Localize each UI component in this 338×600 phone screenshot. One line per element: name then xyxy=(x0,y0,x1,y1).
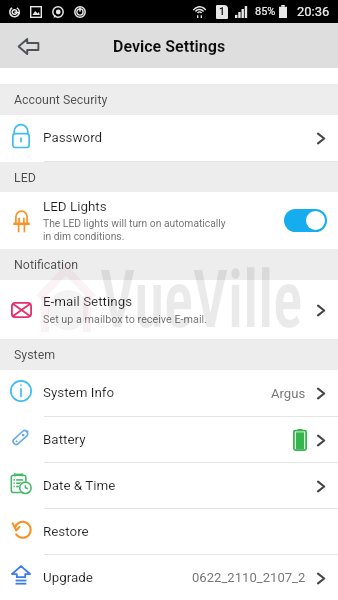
staticText: Notification xyxy=(14,257,79,272)
staticText: The LED lights will turn on automaticall… xyxy=(43,217,226,242)
button[interactable]: E-mail Settings xyxy=(0,280,338,339)
button[interactable]: LED Lights toggle xyxy=(284,209,327,232)
button[interactable]: Date & Time xyxy=(0,463,338,509)
staticText: Upgrade xyxy=(43,570,93,586)
staticText: 85% xyxy=(255,5,276,18)
staticText: Argus xyxy=(271,386,306,401)
staticText: LED xyxy=(14,170,36,185)
button[interactable]: LED Lights xyxy=(0,192,338,249)
button[interactable]: Password xyxy=(0,115,338,162)
staticText: System xyxy=(14,347,56,362)
staticText: System Info xyxy=(43,385,115,401)
staticText: Battery xyxy=(43,432,86,448)
button[interactable]: Restore xyxy=(0,509,338,555)
staticText: VueVille xyxy=(100,252,303,345)
staticText: LED Lights xyxy=(43,199,107,215)
staticText: 20:36 xyxy=(297,4,330,19)
button[interactable]: Back xyxy=(9,27,47,65)
staticText: Device Settings xyxy=(113,37,226,56)
button[interactable]: System Info xyxy=(0,370,338,417)
staticText: Account Security xyxy=(14,92,108,107)
staticText: Date & Time xyxy=(43,478,116,494)
staticText: Set up a mailbox to receive E-mail. xyxy=(43,313,207,326)
staticText: Password xyxy=(43,130,103,146)
staticText: Restore xyxy=(43,524,89,540)
button[interactable]: Battery xyxy=(0,417,338,463)
staticText: E-mail Settings xyxy=(43,294,133,310)
button[interactable]: Upgrade xyxy=(0,555,338,600)
staticText: 1 xyxy=(219,6,225,18)
staticText: 0622_2110_2107_2 xyxy=(192,570,306,585)
